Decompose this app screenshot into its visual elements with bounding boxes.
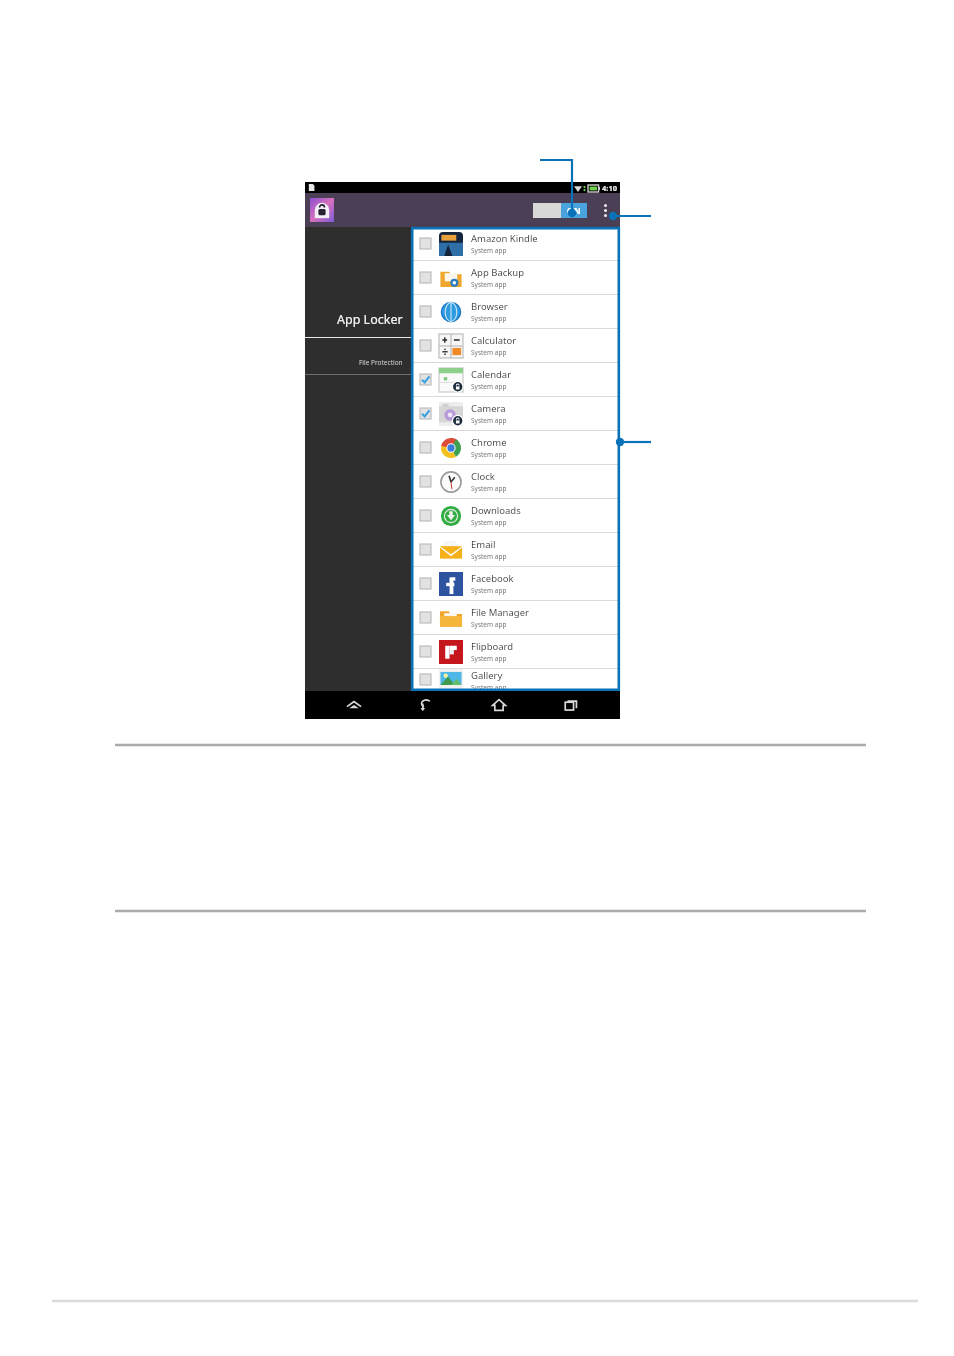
staticText: 4:10 xyxy=(602,183,617,193)
button[interactable]: Browser xyxy=(413,295,620,329)
button[interactable]: Back xyxy=(403,691,449,719)
button[interactable]: Facebook xyxy=(413,567,620,601)
staticText: System app xyxy=(471,484,507,493)
button[interactable]: Asus home xyxy=(331,691,377,719)
staticText: ON xyxy=(567,205,581,217)
button[interactable]: Downloads xyxy=(413,499,620,533)
staticText: Downloads xyxy=(471,504,521,517)
staticText: App Backup xyxy=(471,266,525,279)
button[interactable]: Recents xyxy=(548,691,594,719)
staticText: System app xyxy=(471,382,507,391)
button[interactable]: Calendar xyxy=(413,363,620,397)
button[interactable]: Clock xyxy=(413,465,620,499)
button[interactable]: Amazon Kindle xyxy=(413,227,620,261)
staticText: Email xyxy=(471,538,496,551)
staticText: System app xyxy=(471,246,507,255)
staticText: System app xyxy=(471,683,507,690)
staticText: System app xyxy=(471,586,507,595)
staticText: Chrome xyxy=(471,436,507,449)
button[interactable]: App Locker on/off xyxy=(533,203,587,218)
button[interactable]: File Manager xyxy=(413,601,620,635)
staticText: Browser xyxy=(471,300,508,313)
staticText: Amazon Kindle xyxy=(471,232,538,245)
staticText: System app xyxy=(471,552,507,561)
staticText: System app xyxy=(471,654,507,663)
button[interactable]: More options xyxy=(597,198,613,222)
staticText: Flipboard xyxy=(471,640,514,653)
button[interactable]: Flipboard xyxy=(413,635,620,669)
staticText: System app xyxy=(471,416,507,425)
button[interactable]: Chrome xyxy=(413,431,620,465)
staticText: Facebook xyxy=(471,572,514,585)
staticText: File Manager xyxy=(471,606,529,619)
button[interactable]: App Locker xyxy=(310,198,334,222)
button[interactable]: File Protection xyxy=(305,358,411,367)
button[interactable]: Calculator xyxy=(413,329,620,363)
button[interactable]: Gallery xyxy=(413,669,620,691)
staticText: System app xyxy=(471,348,507,357)
staticText: System app xyxy=(471,518,507,527)
staticText: System app xyxy=(471,450,507,459)
button[interactable]: Email xyxy=(413,533,620,567)
staticText: Calculator xyxy=(471,334,517,347)
button[interactable]: App Locker xyxy=(305,311,411,328)
staticText: File Protection xyxy=(359,358,403,367)
staticText: Calendar xyxy=(471,368,512,381)
staticText: System app xyxy=(471,620,507,629)
staticText: System app xyxy=(471,314,507,323)
staticText: System app xyxy=(471,280,507,289)
staticText: Camera xyxy=(471,402,506,415)
button[interactable]: Home xyxy=(476,691,522,719)
staticText: App Locker xyxy=(337,311,403,328)
button[interactable]: Camera xyxy=(413,397,620,431)
staticText: Clock xyxy=(471,470,495,483)
staticText: Gallery xyxy=(471,669,503,682)
button[interactable]: App Backup xyxy=(413,261,620,295)
